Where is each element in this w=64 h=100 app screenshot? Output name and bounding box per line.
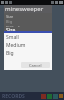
button[interactable]: Cancel	[21, 62, 50, 68]
staticText: Medium	[6, 42, 26, 49]
button[interactable]: Big	[4, 49, 52, 57]
staticText: RECORDS	[2, 93, 25, 100]
button[interactable]: Medium	[4, 41, 52, 49]
staticText: Big	[6, 19, 13, 24]
staticText: minesweeper	[5, 5, 44, 13]
button[interactable]: Small	[4, 33, 52, 41]
staticText: Difficulty	[6, 25, 23, 27]
staticText: Small	[6, 34, 19, 41]
staticText: Cancel	[29, 63, 42, 68]
staticText: Big	[6, 50, 14, 57]
staticText: Size	[6, 14, 14, 19]
staticText: Size	[6, 27, 16, 31]
